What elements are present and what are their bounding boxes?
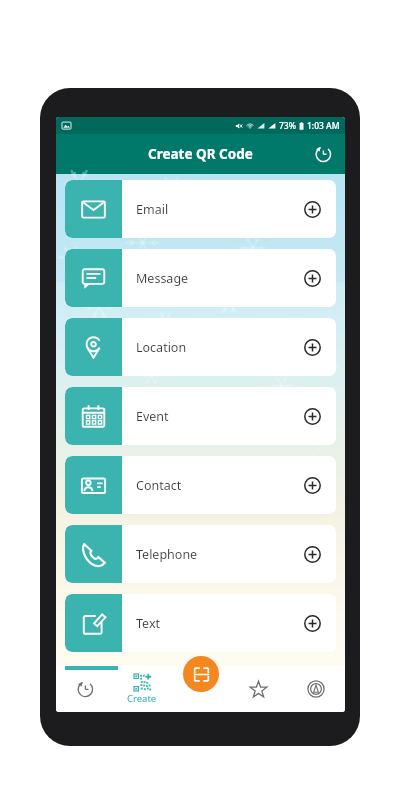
staticText: Telephone [136,546,198,563]
staticText: Text [136,615,161,632]
staticText: Location [136,339,187,356]
button[interactable]: History [56,666,113,712]
button[interactable]: Location [65,318,336,376]
button[interactable]: Scan [183,656,219,692]
button[interactable]: Email [65,180,336,238]
button[interactable]: Add Telephone [301,543,323,565]
staticText: 1:03 AM [307,120,340,132]
staticText: 73% [279,120,296,132]
staticText: Message [136,270,189,287]
button[interactable]: Add Email [301,198,323,220]
button[interactable]: Favorites [229,666,287,712]
button[interactable]: Settings [287,666,345,712]
button[interactable]: Event [65,387,336,445]
button[interactable]: Text [65,594,336,652]
button[interactable]: Telephone [65,525,336,583]
button[interactable]: Add Message [301,267,323,289]
staticText: Event [136,408,169,425]
button[interactable]: Add Contact [301,474,323,496]
button[interactable]: Add Event [301,405,323,427]
staticText: Create QR Code [148,145,253,163]
button[interactable]: Add Text [301,612,323,634]
button[interactable]: Contact [65,456,336,514]
button[interactable]: History [309,140,337,168]
staticText: Create [127,692,157,705]
button[interactable]: Add Location [301,336,323,358]
button[interactable]: Message [65,249,336,307]
staticText: Contact [136,477,182,494]
button[interactable]: Create [113,666,171,712]
staticText: Email [136,201,169,218]
